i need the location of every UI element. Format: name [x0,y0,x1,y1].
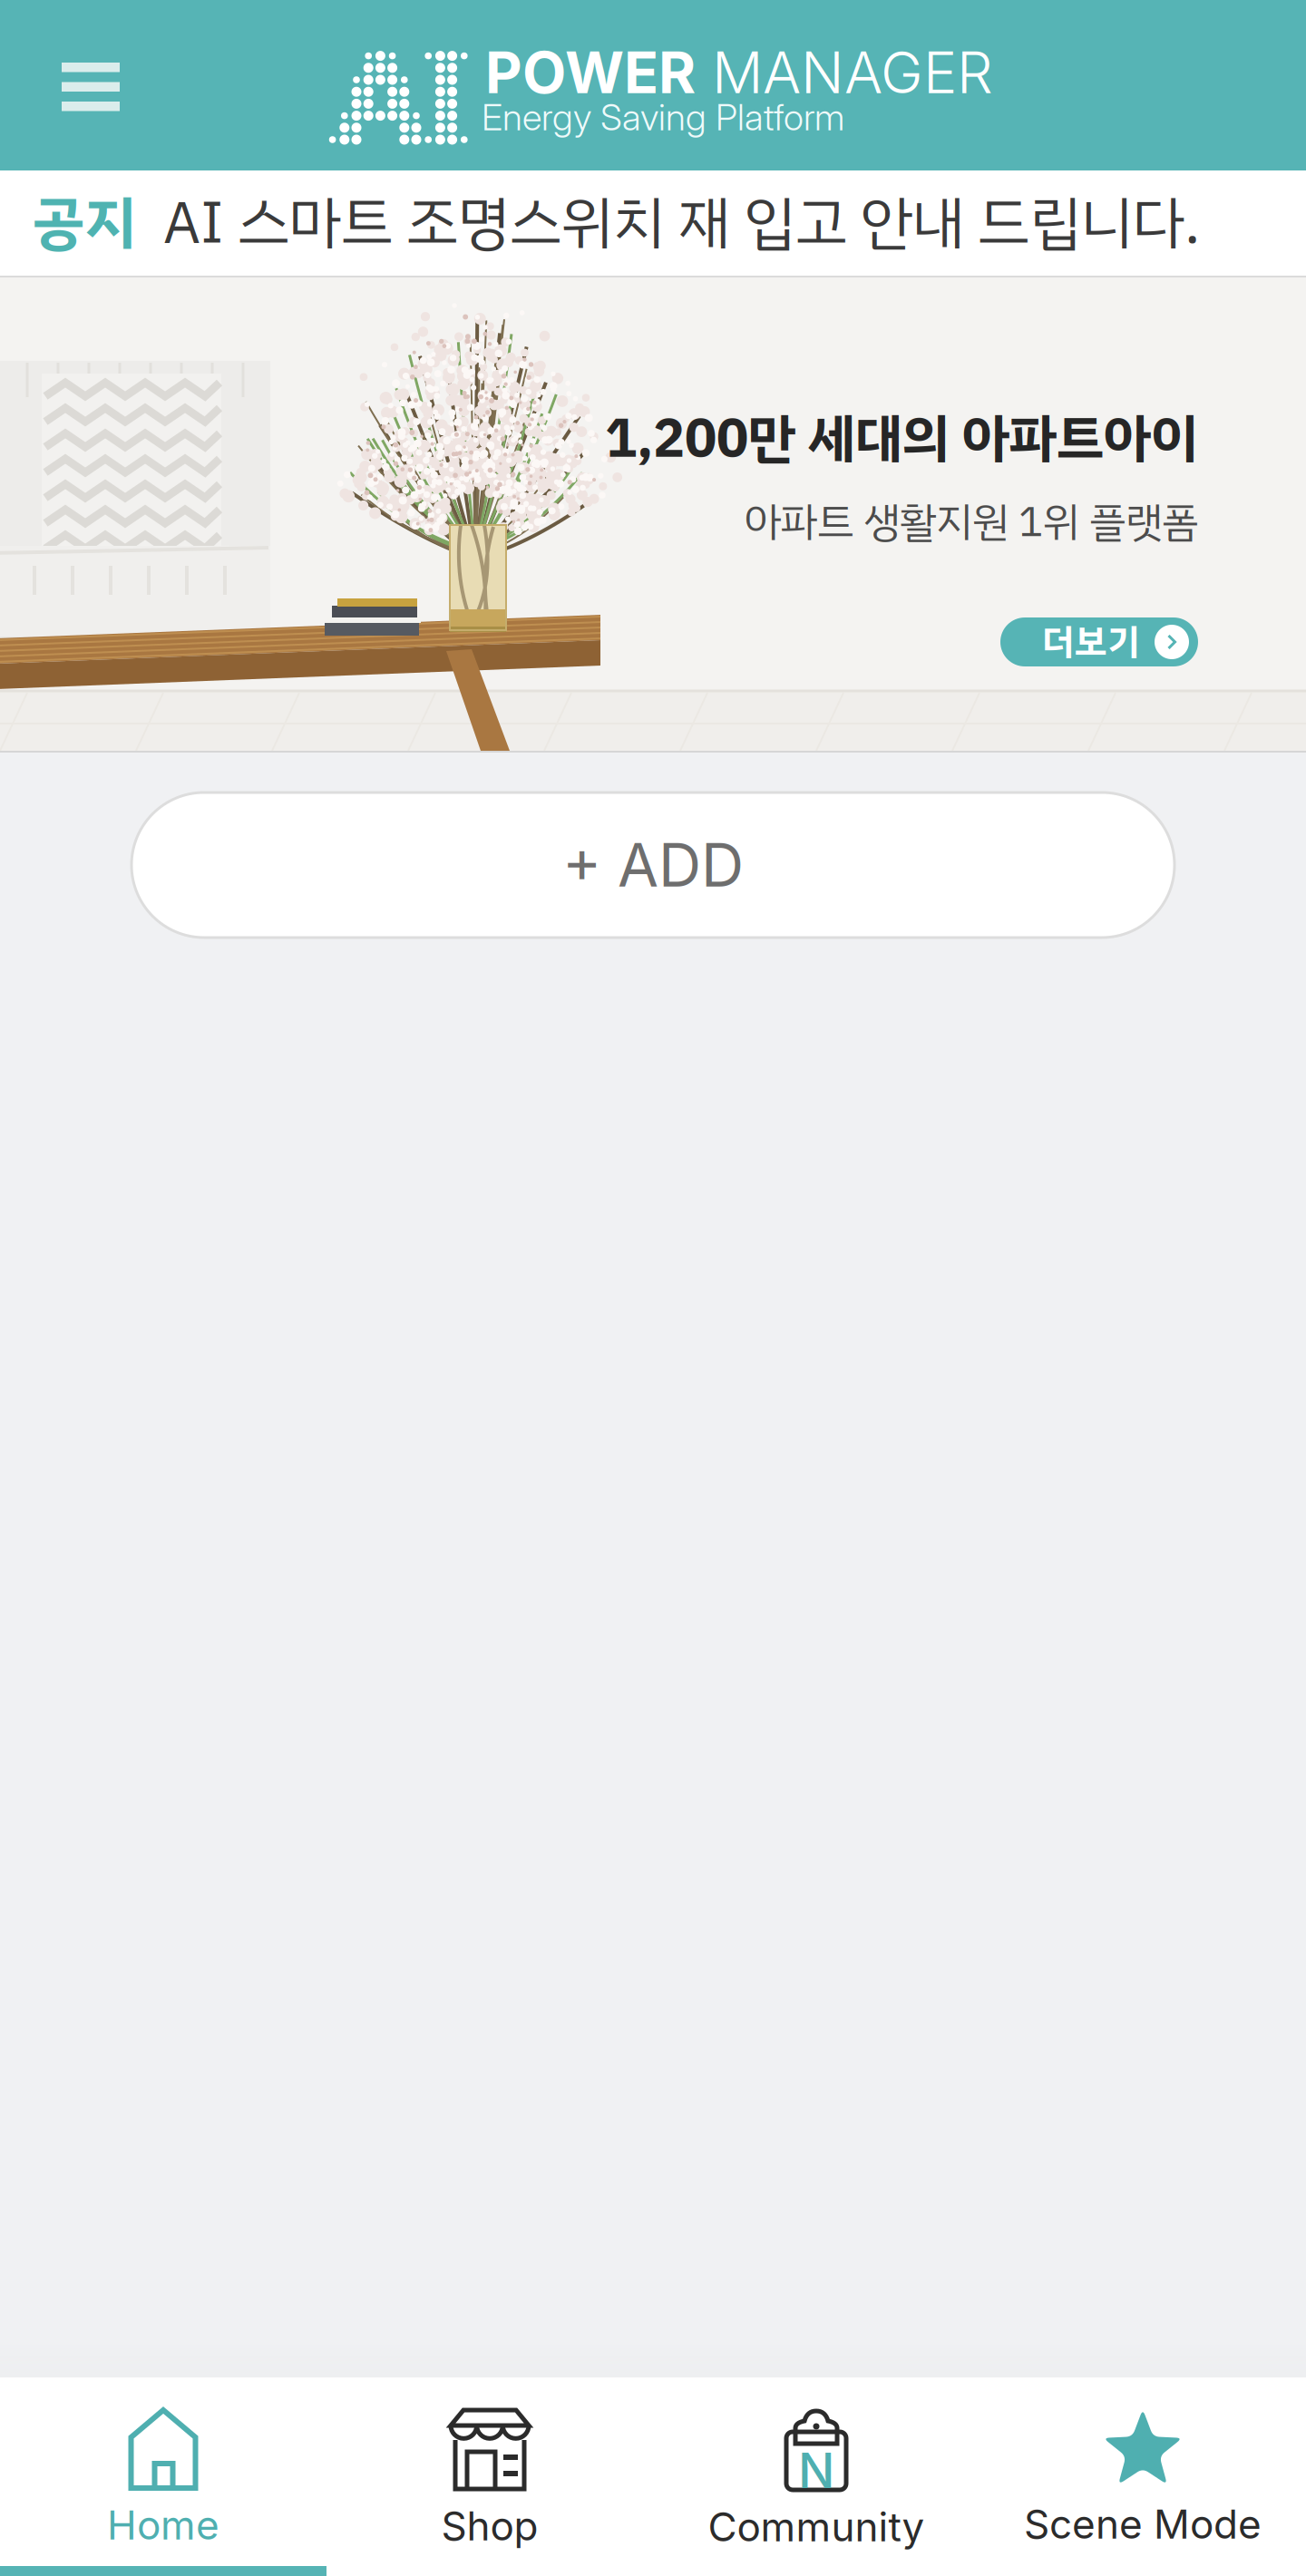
button[interactable]: 공지 [0,170,1306,276]
staticText: Scene Mode [1024,2500,1262,2548]
button[interactable]: Shop [326,2377,653,2566]
staticText: 더보기 [1042,615,1140,669]
staticText: Shop [441,2502,538,2550]
staticText: + ADD [562,829,744,901]
staticText: Home [107,2501,219,2549]
button[interactable]: N [653,2377,979,2566]
button[interactable]: Menu [0,0,160,147]
staticText: 1,200만 세대의 아파트아이 [605,399,1198,479]
staticText: Community [708,2503,925,2551]
staticText: MANAGER [696,38,993,107]
button[interactable]: + ADD [132,792,1174,938]
button[interactable]: 더보기 [1000,617,1198,666]
button[interactable]: Scene Mode [979,2377,1306,2566]
staticText: 아파트 생활지원 1위 플랫폼 [745,491,1198,553]
staticText: AI 스마트 조명스위치 재 입고 안내 드립니다. [136,180,1200,267]
staticText: POWER [485,38,696,107]
staticText: Energy Saving Platform [482,95,844,139]
staticText: N [798,2441,834,2500]
staticText: 공지 [33,180,136,267]
button[interactable]: Home [0,2377,326,2566]
